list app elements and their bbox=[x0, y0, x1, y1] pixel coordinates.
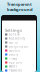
staticText: Accessibility bbox=[9, 37, 25, 40]
staticText: Battery bbox=[9, 53, 18, 56]
button[interactable]: App Store bbox=[2, 60, 36, 64]
staticText: Emergency SOS bbox=[9, 45, 28, 48]
button[interactable]: General bbox=[2, 32, 36, 36]
staticText: Privacy bbox=[9, 57, 17, 60]
staticText: Exposure bbox=[9, 49, 21, 52]
staticText: Wallet bbox=[9, 65, 17, 68]
staticText: Settings bbox=[5, 27, 22, 33]
button[interactable]: Face ID bbox=[2, 40, 36, 44]
button[interactable]: Battery bbox=[2, 52, 36, 56]
button[interactable]: Passwords bbox=[2, 68, 36, 72]
staticText: Face ID bbox=[9, 41, 18, 44]
staticText: App Store bbox=[9, 61, 23, 64]
staticText: Passwords bbox=[9, 69, 22, 72]
button[interactable]: Wallet bbox=[2, 64, 36, 68]
button[interactable]: Emergency SOS bbox=[2, 44, 36, 48]
staticText: General bbox=[9, 33, 20, 36]
staticText: Transparent background bbox=[7, 1, 33, 12]
button[interactable]: Privacy bbox=[2, 56, 36, 60]
button[interactable]: Accessibility bbox=[2, 36, 36, 40]
button[interactable]: Exposure bbox=[2, 48, 36, 52]
